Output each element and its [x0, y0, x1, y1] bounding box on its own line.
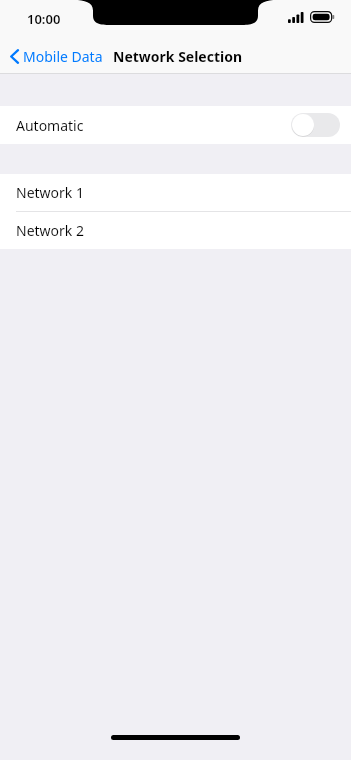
button[interactable]: Mobile Data	[9, 47, 103, 66]
staticText: Network Selection	[113, 47, 243, 66]
staticText: Network 2	[16, 221, 84, 240]
staticText: 10:00	[27, 10, 61, 28]
button[interactable]: Automatic network selection toggle	[291, 113, 340, 137]
button[interactable]: Network 2	[0, 212, 351, 249]
button[interactable]: Automatic	[0, 106, 351, 144]
staticText: Network 1	[16, 183, 84, 202]
staticText: Automatic	[16, 116, 84, 135]
staticText: Mobile Data	[23, 47, 103, 66]
button[interactable]: Network 1	[0, 174, 351, 211]
